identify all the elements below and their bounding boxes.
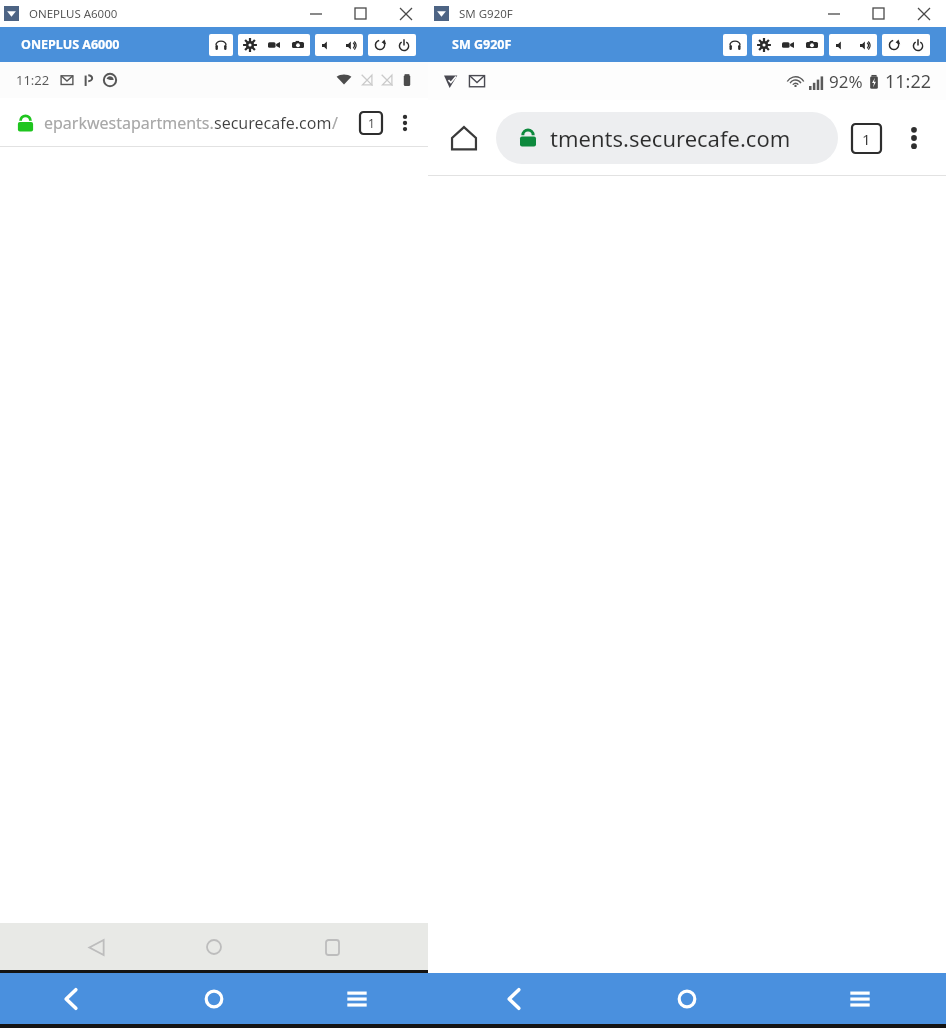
- staticText: ONEPLUS A6000: [29, 6, 118, 22]
- button[interactable]: Record video: [262, 34, 286, 56]
- button[interactable]: Power: [392, 34, 416, 56]
- button[interactable]: Minimize: [811, 0, 856, 27]
- button[interactable]: Menu: [285, 973, 428, 1024]
- button[interactable]: Power: [906, 34, 930, 56]
- button[interactable]: Home: [192, 925, 236, 969]
- staticText: SM G920F: [459, 6, 513, 22]
- staticText: ONEPLUS A6000: [21, 36, 120, 53]
- button[interactable]: Menu: [773, 973, 946, 1024]
- button[interactable]: Rotate: [368, 34, 392, 56]
- button[interactable]: Minimize: [293, 0, 338, 27]
- button[interactable]: Home: [440, 114, 488, 162]
- button[interactable]: More options: [890, 114, 938, 162]
- button[interactable]: Record video: [776, 34, 800, 56]
- button[interactable]: Maximize: [338, 0, 383, 27]
- staticText: /on: [332, 112, 350, 134]
- button[interactable]: Maximize: [856, 0, 901, 27]
- button[interactable]: Rotate: [882, 34, 906, 56]
- button[interactable]: Settings: [238, 34, 262, 56]
- button[interactable]: Volume down: [315, 34, 339, 56]
- button[interactable]: Back: [0, 973, 142, 1024]
- staticText: 92%: [829, 70, 863, 93]
- button[interactable]: Headphones: [209, 34, 233, 56]
- button[interactable]: Home: [142, 973, 285, 1024]
- button[interactable]: Site security: [10, 108, 40, 138]
- button[interactable]: Volume up: [339, 34, 363, 56]
- button[interactable]: Screenshot: [286, 34, 310, 56]
- staticText: SM G920F: [452, 36, 512, 53]
- button[interactable]: eparkwestapartments.: [44, 112, 350, 134]
- button[interactable]: Volume up: [853, 34, 877, 56]
- button[interactable]: More options: [388, 106, 422, 140]
- staticText: 1: [862, 129, 871, 149]
- button[interactable]: Settings: [752, 34, 776, 56]
- button[interactable]: Back: [74, 925, 118, 969]
- button[interactable]: Volume down: [829, 34, 853, 56]
- button[interactable]: Recents: [310, 925, 354, 969]
- button[interactable]: Close: [901, 0, 946, 27]
- staticText: 11:22: [16, 71, 50, 89]
- staticText: securecafe.com: [214, 112, 332, 134]
- button[interactable]: Tabs, 1 open: [842, 114, 890, 162]
- button[interactable]: Close: [383, 0, 428, 27]
- staticText: eparkwestapartments.: [44, 112, 214, 134]
- staticText: 11:22: [885, 69, 932, 94]
- button[interactable]: Headphones: [723, 34, 747, 56]
- button[interactable]: tments.securecafe.com: [496, 112, 838, 164]
- staticText: 1: [368, 115, 375, 131]
- staticText: tments.securecafe.com: [550, 123, 791, 153]
- button[interactable]: Home: [600, 973, 773, 1024]
- button[interactable]: Back: [428, 973, 600, 1024]
- button[interactable]: Tabs, 1 open: [354, 106, 388, 140]
- button[interactable]: Screenshot: [800, 34, 824, 56]
